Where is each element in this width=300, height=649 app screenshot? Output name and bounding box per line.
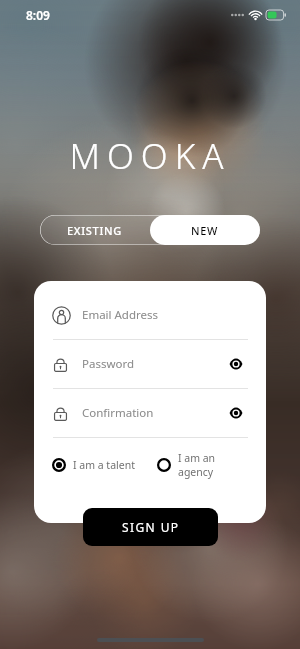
staticText: I am an agency: [178, 451, 248, 479]
button[interactable]: I am a talent: [52, 458, 135, 472]
button[interactable]: EXISTING: [40, 215, 150, 245]
button[interactable]: Email Address: [52, 291, 248, 339]
staticText: NEW: [191, 223, 219, 238]
staticText: Password: [82, 356, 224, 372]
staticText: Email Address: [82, 307, 248, 323]
button[interactable]: Show password: [224, 401, 248, 425]
button[interactable]: Confirmation: [52, 389, 248, 437]
staticText: EXISTING: [67, 223, 123, 238]
button[interactable]: SIGN UP: [83, 508, 218, 546]
staticText: I am a talent: [73, 458, 135, 472]
button[interactable]: Show password: [224, 352, 248, 376]
button[interactable]: Password: [52, 340, 248, 388]
staticText: Confirmation: [82, 405, 224, 421]
staticText: MOOKA: [69, 132, 231, 180]
button[interactable]: I am an agency: [157, 451, 248, 479]
staticText: 8:09: [26, 7, 50, 23]
staticText: SIGN UP: [122, 519, 180, 535]
button[interactable]: NEW: [150, 215, 260, 245]
